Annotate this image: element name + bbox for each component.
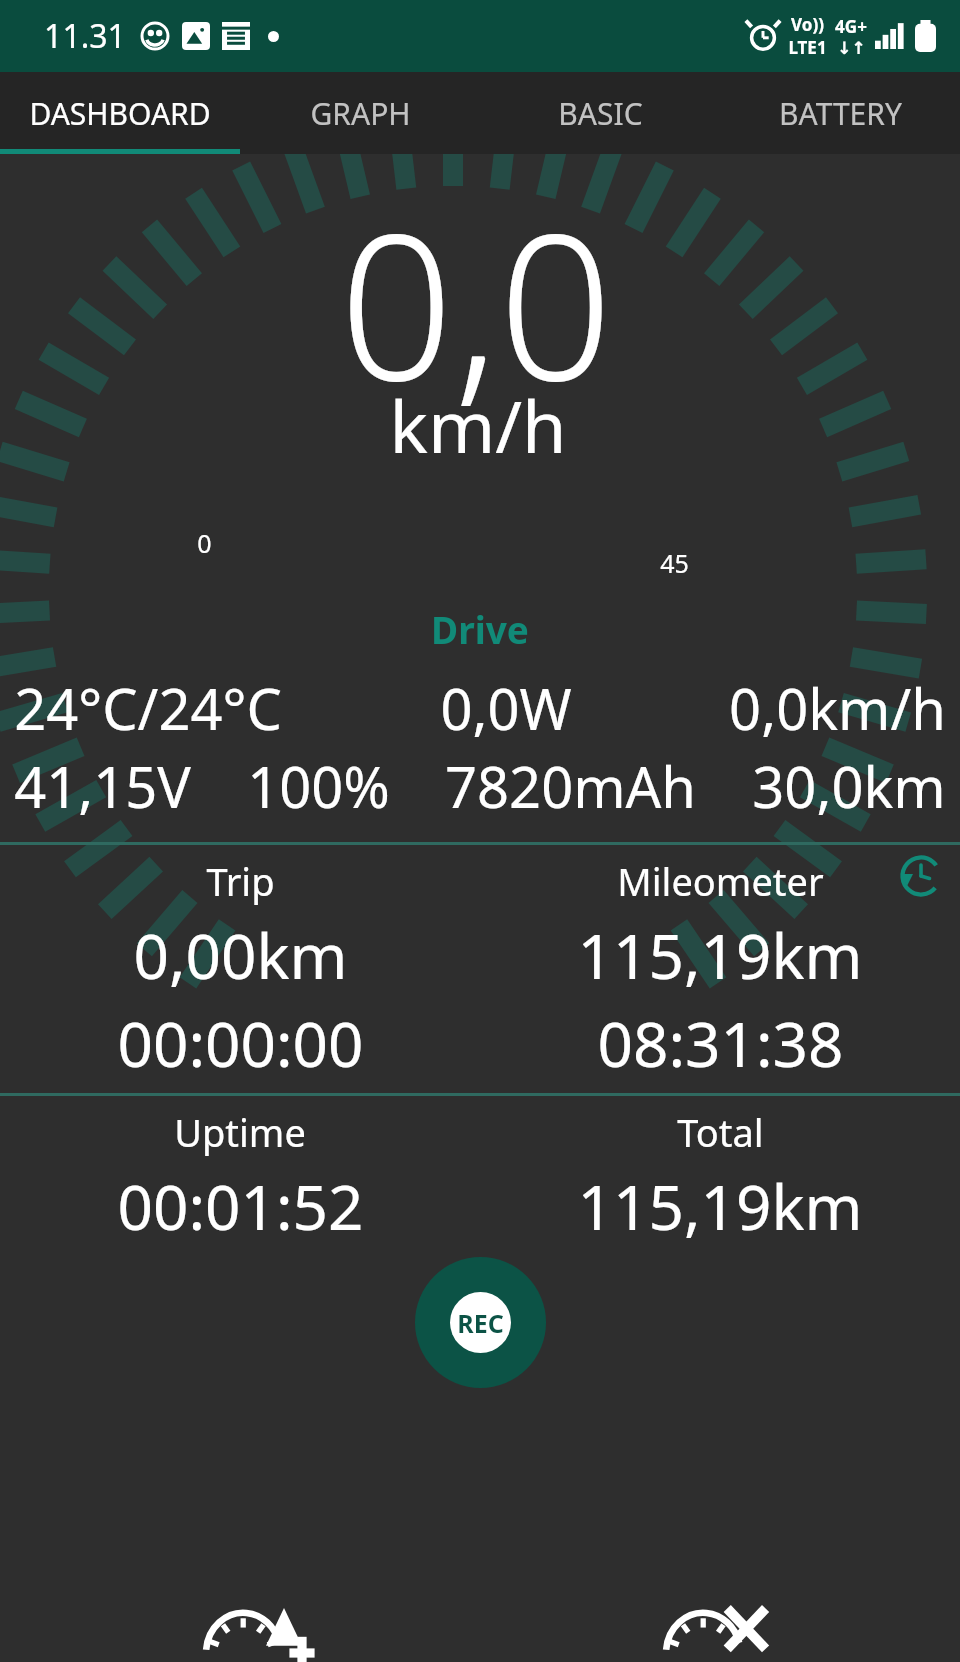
staticText: 08:31:38: [597, 1001, 844, 1085]
staticText: 45: [660, 546, 689, 580]
staticText: 00:00:00: [117, 1001, 364, 1085]
button[interactable]: Trip: [0, 845, 480, 1085]
button[interactable]: Record: [415, 1257, 546, 1388]
staticText: REC: [457, 1306, 504, 1340]
staticText: BATTERY: [779, 93, 902, 134]
staticText: DASHBOARD: [29, 93, 211, 134]
staticText: 0,0km/h: [729, 670, 946, 746]
staticText: 00:01:52: [117, 1164, 364, 1248]
button[interactable]: Total: [480, 1096, 960, 1248]
staticText: 0,0W: [440, 670, 572, 746]
staticText: Vo)): [791, 13, 824, 36]
staticText: km/h: [389, 376, 567, 474]
staticText: Drive: [431, 604, 529, 654]
staticText: Uptime: [174, 1106, 306, 1158]
button[interactable]: History: [892, 847, 950, 905]
staticText: 0: [197, 526, 212, 560]
staticText: 24°C/24°C: [14, 670, 282, 746]
staticText: ↓↑: [837, 38, 866, 58]
button[interactable]: Max speed: [620, 1602, 820, 1662]
button[interactable]: Mileometer: [480, 845, 960, 1085]
staticText: 7820mAh: [445, 748, 696, 824]
button[interactable]: BASIC: [480, 72, 720, 154]
staticText: 0,00km: [133, 913, 348, 997]
staticText: 30,0km: [752, 748, 946, 824]
staticText: BASIC: [558, 93, 643, 134]
button[interactable]: Uptime: [0, 1096, 480, 1248]
staticText: 41,15V: [14, 748, 191, 824]
staticText: LTE1: [788, 36, 827, 59]
button[interactable]: GRAPH: [240, 72, 480, 154]
staticText: 115,19km: [577, 913, 863, 997]
staticText: Mileometer: [617, 855, 824, 907]
staticText: 4G+: [835, 15, 867, 38]
staticText: 11.31: [44, 14, 126, 58]
staticText: Trip: [206, 855, 275, 907]
button[interactable]: BATTERY: [720, 72, 960, 154]
staticText: GRAPH: [310, 93, 411, 134]
staticText: 0,0: [339, 166, 613, 438]
staticText: 100%: [247, 748, 390, 824]
staticText: 115,19km: [577, 1164, 863, 1248]
staticText: Total: [677, 1106, 764, 1158]
button[interactable]: Average speed: [160, 1602, 360, 1662]
button[interactable]: DASHBOARD: [0, 72, 240, 154]
